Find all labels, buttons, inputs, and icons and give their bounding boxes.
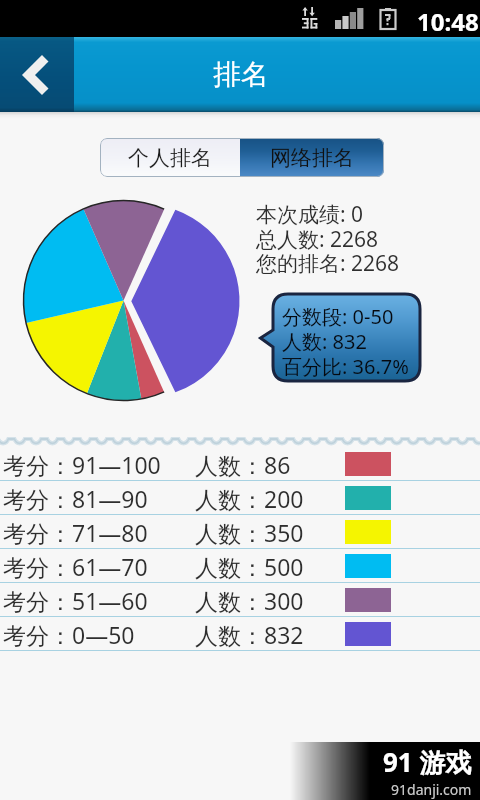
staticText: 本次成绩: 0 总人数: 2268 您的排名: 2268 (256, 200, 400, 277)
button[interactable]: 考分：0—50 (0, 617, 480, 651)
staticText: 排名 (213, 57, 269, 92)
staticText: 考分：0—50 (3, 619, 135, 650)
staticText: 10:48 (417, 5, 479, 38)
staticText: 网络排名 (270, 145, 354, 171)
staticText: 人数：350 (195, 517, 304, 548)
staticText: 个人排名 (128, 145, 212, 171)
staticText: 91 游戏 (383, 744, 472, 780)
staticText: 考分：71—80 (3, 517, 148, 548)
button[interactable]: 个人排名 (100, 138, 240, 177)
staticText: 考分：51—60 (3, 585, 148, 616)
staticText: 人数：832 (195, 619, 304, 650)
staticText: 人数：86 (195, 449, 291, 480)
staticText: 分数段: 0-50 人数: 832 百分比: 36.7% (282, 303, 409, 380)
button[interactable]: 考分：91—100 (0, 447, 480, 481)
button[interactable]: 考分：61—70 (0, 549, 480, 583)
button[interactable]: 考分：81—90 (0, 481, 480, 515)
staticText: 考分：91—100 (3, 449, 161, 480)
staticText: 考分：81—90 (3, 483, 148, 514)
staticText: 91danji.com (391, 780, 472, 799)
staticText: 考分：61—70 (3, 551, 148, 582)
button[interactable]: 考分：51—60 (0, 583, 480, 617)
staticText: 人数：500 (195, 551, 304, 582)
button[interactable]: 网络排名 (240, 138, 384, 177)
button[interactable]: 考分：71—80 (0, 515, 480, 549)
staticText: 人数：300 (195, 585, 304, 616)
button[interactable]: Back (0, 37, 74, 112)
staticText: 人数：200 (195, 483, 304, 514)
